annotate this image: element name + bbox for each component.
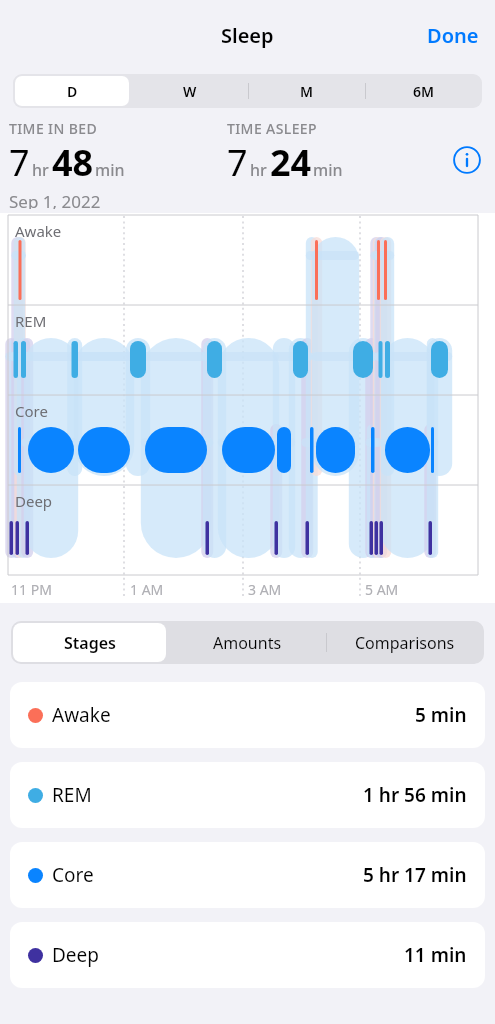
staticText: W xyxy=(183,82,197,101)
button[interactable]: Deep xyxy=(10,922,485,988)
staticText: 5 min xyxy=(415,702,467,728)
button[interactable]: W xyxy=(131,74,248,108)
button[interactable]: Awake xyxy=(10,682,485,748)
button[interactable]: REM xyxy=(10,762,485,828)
staticText: REM xyxy=(15,311,47,331)
button[interactable]: About sleep data xyxy=(450,143,484,177)
staticText: Sep 1, 2022 xyxy=(9,190,101,209)
button[interactable]: M xyxy=(248,74,365,108)
staticText: 1 hr 56 min xyxy=(363,782,467,808)
button[interactable]: D xyxy=(13,74,131,108)
staticText: 5 AM xyxy=(365,580,399,599)
staticText: M xyxy=(300,82,314,101)
staticText: min xyxy=(95,159,125,181)
staticText: Awake xyxy=(52,702,111,728)
staticText: Core xyxy=(52,862,94,888)
button[interactable]: Comparisons xyxy=(326,621,484,664)
staticText: Deep xyxy=(52,942,99,968)
staticText: Awake xyxy=(15,221,62,241)
staticText: Comparisons xyxy=(355,632,455,654)
staticText: Stages xyxy=(64,632,116,654)
staticText: 6M xyxy=(413,82,435,101)
staticText: TIME IN BED xyxy=(9,119,98,138)
staticText: Sleep xyxy=(221,22,274,49)
staticText: 3 AM xyxy=(248,580,282,599)
button[interactable]: Core xyxy=(10,842,485,908)
staticText: D xyxy=(67,82,78,101)
staticText: Deep xyxy=(15,491,53,511)
staticText: 24 xyxy=(270,138,312,187)
button[interactable]: 6M xyxy=(365,74,482,108)
staticText: TIME ASLEEP xyxy=(227,119,317,138)
button[interactable]: Amounts xyxy=(168,621,326,664)
staticText: Done xyxy=(427,22,479,49)
staticText: 11 min xyxy=(404,942,467,968)
staticText: Core xyxy=(15,401,48,421)
staticText: hr xyxy=(250,159,267,181)
staticText: Amounts xyxy=(213,632,282,654)
staticText: 1 AM xyxy=(130,580,164,599)
button[interactable]: Done xyxy=(411,14,495,57)
staticText: REM xyxy=(52,782,92,808)
staticText: 11 PM xyxy=(11,580,52,599)
staticText: 7 xyxy=(9,138,30,187)
staticText: 48 xyxy=(52,138,94,187)
button[interactable]: Stages xyxy=(11,621,168,664)
staticText: min xyxy=(313,159,343,181)
staticText: 5 hr 17 min xyxy=(363,862,467,888)
staticText: 7 xyxy=(227,138,248,187)
staticText: hr xyxy=(32,159,49,181)
